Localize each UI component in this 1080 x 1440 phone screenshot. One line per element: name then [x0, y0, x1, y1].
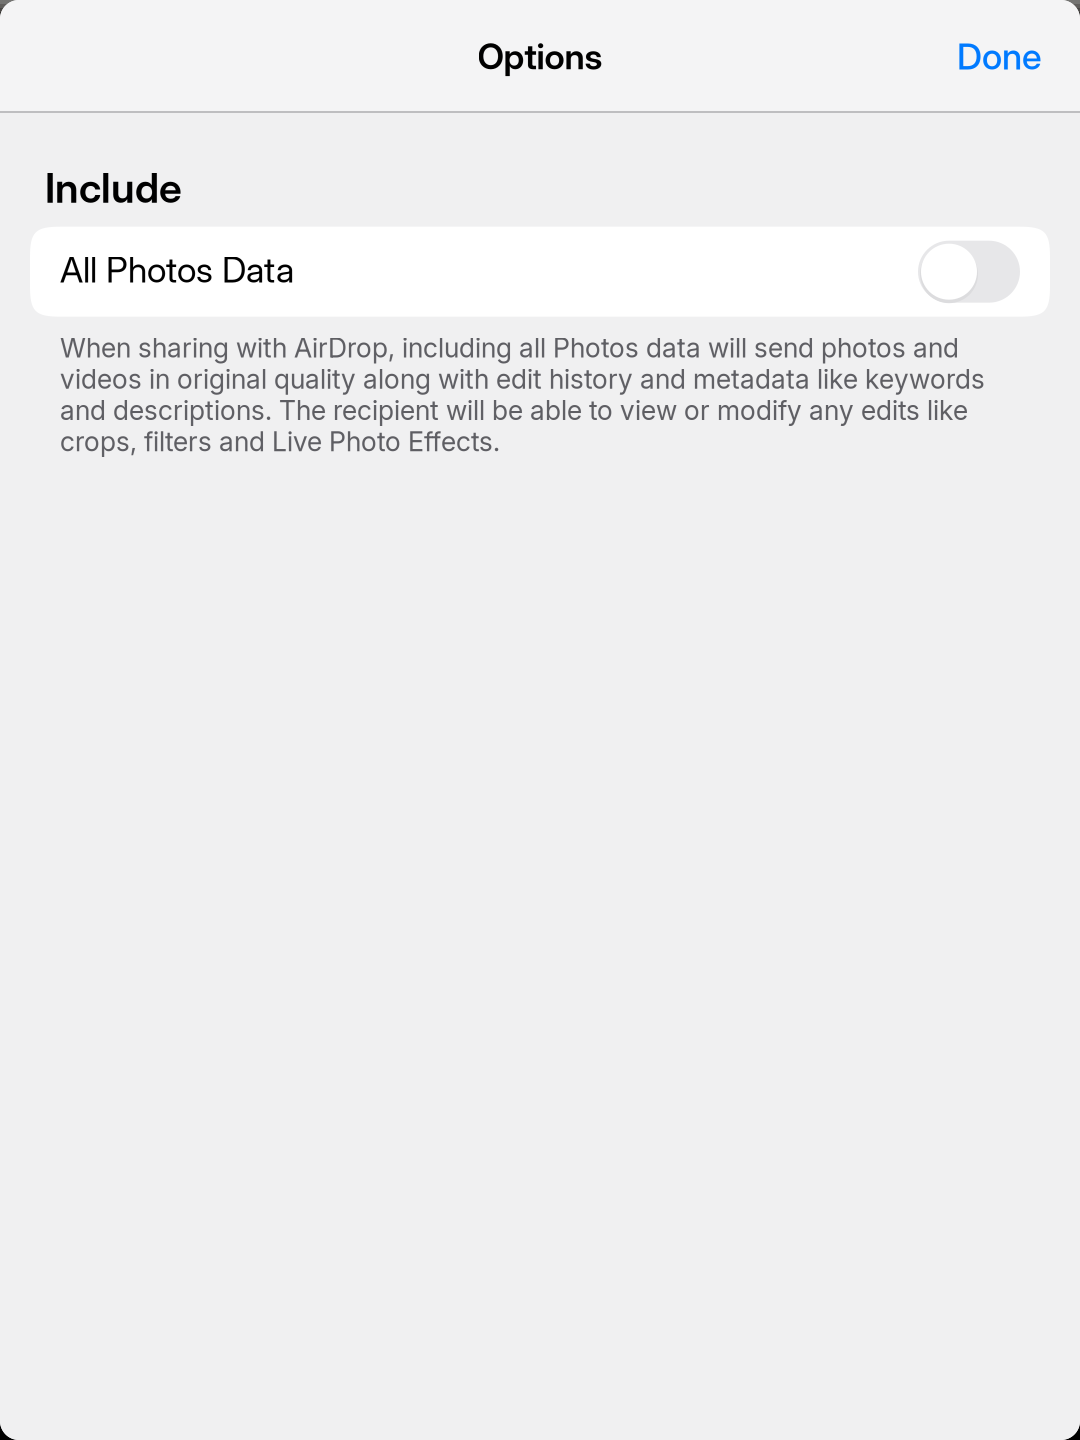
staticText: All Photos Data [60, 248, 294, 291]
staticText: Options [477, 35, 602, 78]
staticText: Include [45, 163, 182, 213]
staticText: Done [957, 35, 1042, 78]
staticText: When sharing with AirDrop, including all… [60, 332, 985, 458]
button[interactable]: Done [923, 13, 1080, 100]
button[interactable]: All Photos Data [30, 227, 1050, 317]
